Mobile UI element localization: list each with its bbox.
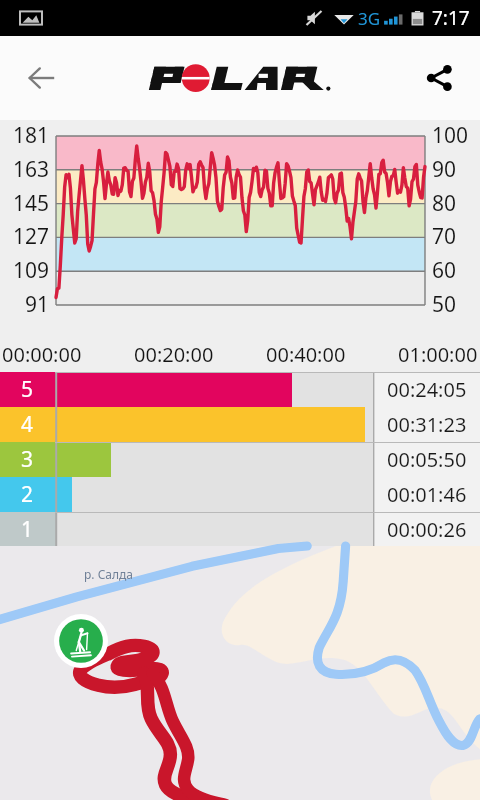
staticText: р. Салда xyxy=(84,566,133,582)
staticText: 00:00:26 xyxy=(387,516,467,543)
staticText: 4 xyxy=(21,410,34,439)
staticText: 163 xyxy=(13,155,50,184)
staticText: 01:00:00 xyxy=(398,341,478,368)
staticText: 00:05:50 xyxy=(387,446,467,473)
staticText: 00:24:05 xyxy=(387,376,467,403)
button[interactable]: 5 xyxy=(0,372,480,407)
staticText: 1 xyxy=(21,515,34,544)
staticText: 90 xyxy=(432,155,457,184)
staticText: 00:20:00 xyxy=(134,341,214,368)
staticText: 181 xyxy=(13,121,50,150)
staticText: 3 xyxy=(21,445,34,474)
button[interactable]: 1 xyxy=(0,512,480,546)
staticText: 00:01:46 xyxy=(387,481,467,508)
staticText: 50 xyxy=(432,290,457,319)
staticText: 00:31:23 xyxy=(387,411,467,438)
staticText: 00:40:00 xyxy=(266,341,346,368)
staticText: 91 xyxy=(25,290,50,319)
staticText: 2 xyxy=(21,480,34,509)
staticText: 60 xyxy=(432,256,457,285)
staticText: 3G xyxy=(358,7,381,30)
button[interactable]: Back xyxy=(12,49,70,107)
staticText: 7:17 xyxy=(432,5,470,31)
staticText: 109 xyxy=(13,256,50,285)
button[interactable]: Share xyxy=(410,49,468,107)
button[interactable]: 3 xyxy=(0,442,480,477)
staticText: 100 xyxy=(432,121,469,150)
staticText: 127 xyxy=(13,222,50,251)
staticText: 5 xyxy=(21,375,34,404)
staticText: 80 xyxy=(432,189,457,218)
staticText: 145 xyxy=(13,189,50,218)
staticText: 70 xyxy=(432,222,457,251)
staticText: 00:00:00 xyxy=(2,341,82,368)
button[interactable]: 4 xyxy=(0,407,480,442)
button[interactable]: 2 xyxy=(0,477,480,512)
button[interactable]: Start location xyxy=(54,614,108,668)
